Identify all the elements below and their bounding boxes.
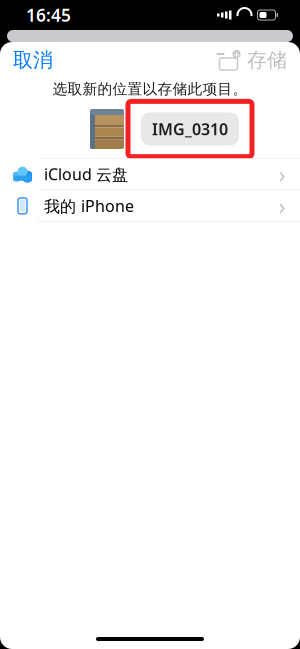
staticText: +	[233, 47, 239, 61]
button[interactable]: IMG_0310	[128, 101, 252, 157]
button[interactable]: 取消	[0, 40, 53, 80]
staticText: 16:45	[26, 3, 71, 26]
button[interactable]: 我的 iPhone	[0, 190, 300, 221]
button[interactable]: 新建文件夹	[210, 42, 247, 78]
staticText: ›	[278, 159, 285, 189]
staticText: iCloud 云盘	[44, 163, 128, 185]
staticText: 取消	[13, 48, 53, 72]
button[interactable]: 存储	[247, 40, 300, 80]
staticText: 选取新的位置以存储此项目。	[52, 80, 247, 98]
button[interactable]: iCloud 云盘	[0, 159, 300, 190]
staticText: 存储	[247, 48, 287, 72]
staticText: IMG_0310	[152, 118, 228, 140]
staticText: 我的 iPhone	[44, 195, 134, 216]
staticText: ›	[278, 191, 285, 221]
